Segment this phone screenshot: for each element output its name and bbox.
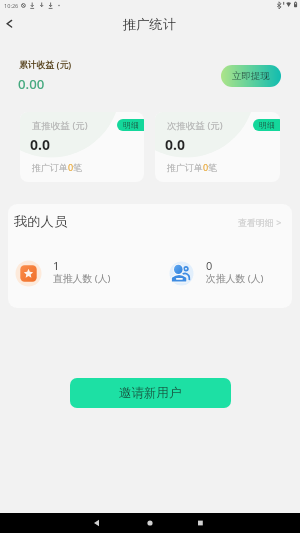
staticText: 邀请新用户 (119, 385, 182, 401)
staticText: 推广订单0笔 (32, 161, 83, 173)
staticText: 直推收益 (元) (32, 119, 88, 132)
staticText: 立即提现 (232, 70, 270, 82)
staticText: 推广统计 (123, 16, 177, 33)
staticText: 1 (53, 258, 60, 273)
staticText: 明细 (259, 120, 275, 130)
staticText: 推广订单0笔 (167, 161, 218, 173)
button[interactable]: 立即提现 (221, 65, 281, 87)
staticText: 0.0 (30, 135, 50, 154)
button[interactable]: 邀请新用户 (70, 378, 231, 408)
button[interactable]: Back (0, 13, 20, 33)
staticText: 10:26 (4, 2, 19, 10)
staticText: 直推人数 (人) (53, 272, 111, 285)
staticText: 次推人数 (人) (206, 272, 264, 285)
button[interactable]: 次推收益 (元) (155, 112, 280, 182)
staticText: 明细 (123, 120, 139, 130)
button[interactable]: 明细 (117, 119, 144, 131)
staticText: 我的人员 (14, 213, 68, 230)
staticText: 累计收益 (元) (19, 59, 72, 71)
button[interactable]: 查看明细 > (238, 216, 282, 228)
staticText: 0.00 (18, 75, 45, 93)
staticText: 0 (206, 258, 213, 273)
button[interactable]: 明细 (253, 119, 280, 131)
staticText: 查看明细 > (238, 216, 282, 228)
staticText: 0.0 (165, 135, 185, 154)
staticText: 次推收益 (元) (167, 119, 223, 132)
button[interactable]: 直推收益 (元) (20, 112, 144, 182)
